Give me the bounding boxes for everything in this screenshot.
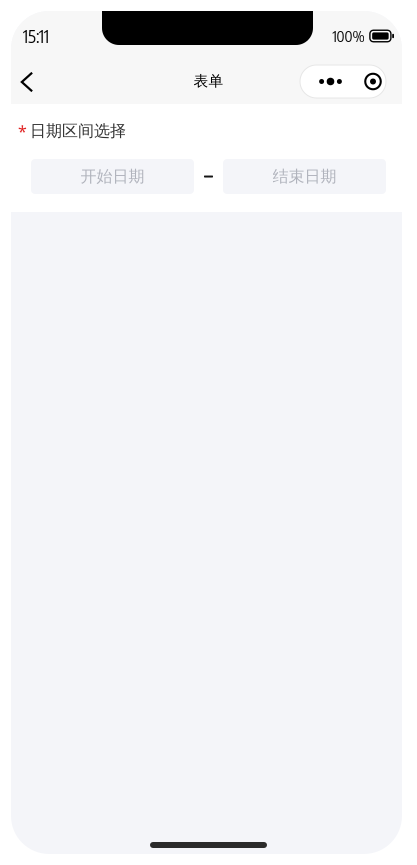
staticText: 100%: [332, 27, 364, 45]
staticText: 日期区间选择: [30, 121, 126, 141]
staticText: 结束日期: [272, 167, 336, 186]
button[interactable]: More options: [300, 65, 386, 98]
staticText: 表单: [193, 72, 223, 90]
staticText: *: [18, 120, 27, 142]
staticText: 开始日期: [80, 167, 144, 186]
button[interactable]: 开始日期: [31, 159, 194, 194]
button[interactable]: Back: [5, 60, 49, 104]
staticText: 15:11: [23, 25, 49, 47]
button[interactable]: 结束日期: [223, 159, 386, 194]
